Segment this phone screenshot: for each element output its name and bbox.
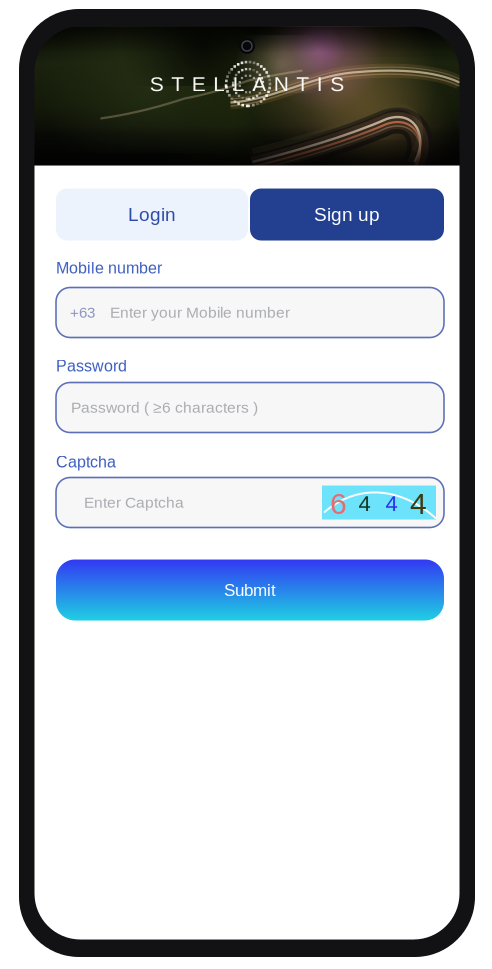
staticText: L [213,72,225,96]
staticText: N [274,72,289,96]
staticText: Password [56,357,127,375]
staticText: S [330,72,344,96]
staticText: Submit [224,580,276,599]
staticText: L [233,72,245,96]
staticText: A [252,72,266,96]
staticText: 6 [330,487,347,520]
staticText: 4 [358,491,370,516]
staticText: +63 [70,304,95,321]
staticText: E [192,72,206,96]
button[interactable]: Submit [56,559,444,620]
staticText: Enter your Mobile number [110,304,290,321]
staticText: Captcha [56,453,116,471]
staticText: 4 [410,487,427,520]
staticText: Login [128,204,176,225]
staticText: Sign up [314,204,380,225]
staticText: I [317,72,323,96]
staticText: Mobile number [56,259,162,277]
staticText: Enter Captcha [84,494,184,511]
button[interactable]: Sign up [250,188,444,240]
staticText: Password ( ≥6 characters ) [71,399,258,416]
staticText: 4 [385,491,397,516]
staticText: S [150,72,164,96]
staticText: T [171,72,184,96]
staticText: T [296,72,309,96]
button[interactable]: Login [56,188,248,240]
